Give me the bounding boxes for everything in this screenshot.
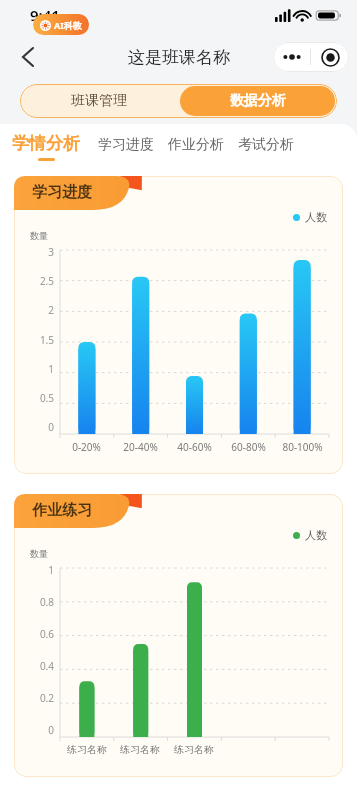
staticText: AI科教 <box>54 19 82 31</box>
button[interactable]: 考试分析 <box>238 124 294 166</box>
staticText: 0-20% <box>72 440 101 454</box>
staticText: 2 <box>48 303 54 317</box>
staticText: 3 <box>48 245 54 259</box>
staticText: 2.5 <box>39 274 54 288</box>
staticText: 考试分析 <box>238 136 294 154</box>
staticText: 60-80% <box>231 440 266 454</box>
staticText: 作业分析 <box>168 136 224 154</box>
button[interactable]: 数据分析 <box>180 86 335 116</box>
staticText: 0 <box>48 420 54 434</box>
staticText: 0.5 <box>39 391 54 405</box>
button[interactable]: 班课管理 <box>20 84 178 118</box>
staticText: 1 <box>48 563 54 577</box>
staticText: 0.2 <box>39 691 54 705</box>
staticText: 9:41 <box>30 5 60 25</box>
button[interactable]: 学情分析 <box>12 124 80 166</box>
staticText: 0 <box>48 723 54 737</box>
staticText: 数量 <box>30 230 48 241</box>
staticText: 1 <box>48 362 54 376</box>
staticText: 作业练习 <box>32 501 92 520</box>
button[interactable]: Close <box>311 42 349 72</box>
staticText: 人数 <box>305 528 327 542</box>
staticText: 学习进度 <box>32 183 92 202</box>
staticText: 20-40% <box>123 440 158 454</box>
button[interactable]: More <box>273 42 310 72</box>
staticText: 班课管理 <box>71 92 127 110</box>
staticText: 80-100% <box>282 440 323 454</box>
staticText: 数据分析 <box>230 92 286 110</box>
staticText: 学习进度 <box>98 136 154 154</box>
staticText: 练习名称 <box>67 743 107 756</box>
staticText: 1.5 <box>39 333 54 347</box>
button[interactable]: 学习进度 <box>98 124 154 166</box>
staticText: 练习名称 <box>120 743 160 756</box>
staticText: 40-60% <box>177 440 212 454</box>
staticText: 0.4 <box>39 659 54 673</box>
staticText: 数量 <box>30 548 48 559</box>
staticText: 0.6 <box>39 627 54 641</box>
staticText: 练习名称 <box>174 743 214 756</box>
button[interactable]: Back <box>10 39 46 75</box>
staticText: 0.8 <box>39 595 54 609</box>
staticText: 学情分析 <box>12 133 80 154</box>
button[interactable]: 作业分析 <box>168 124 224 166</box>
staticText: 这是班课名称 <box>128 47 230 68</box>
staticText: 人数 <box>305 210 327 224</box>
